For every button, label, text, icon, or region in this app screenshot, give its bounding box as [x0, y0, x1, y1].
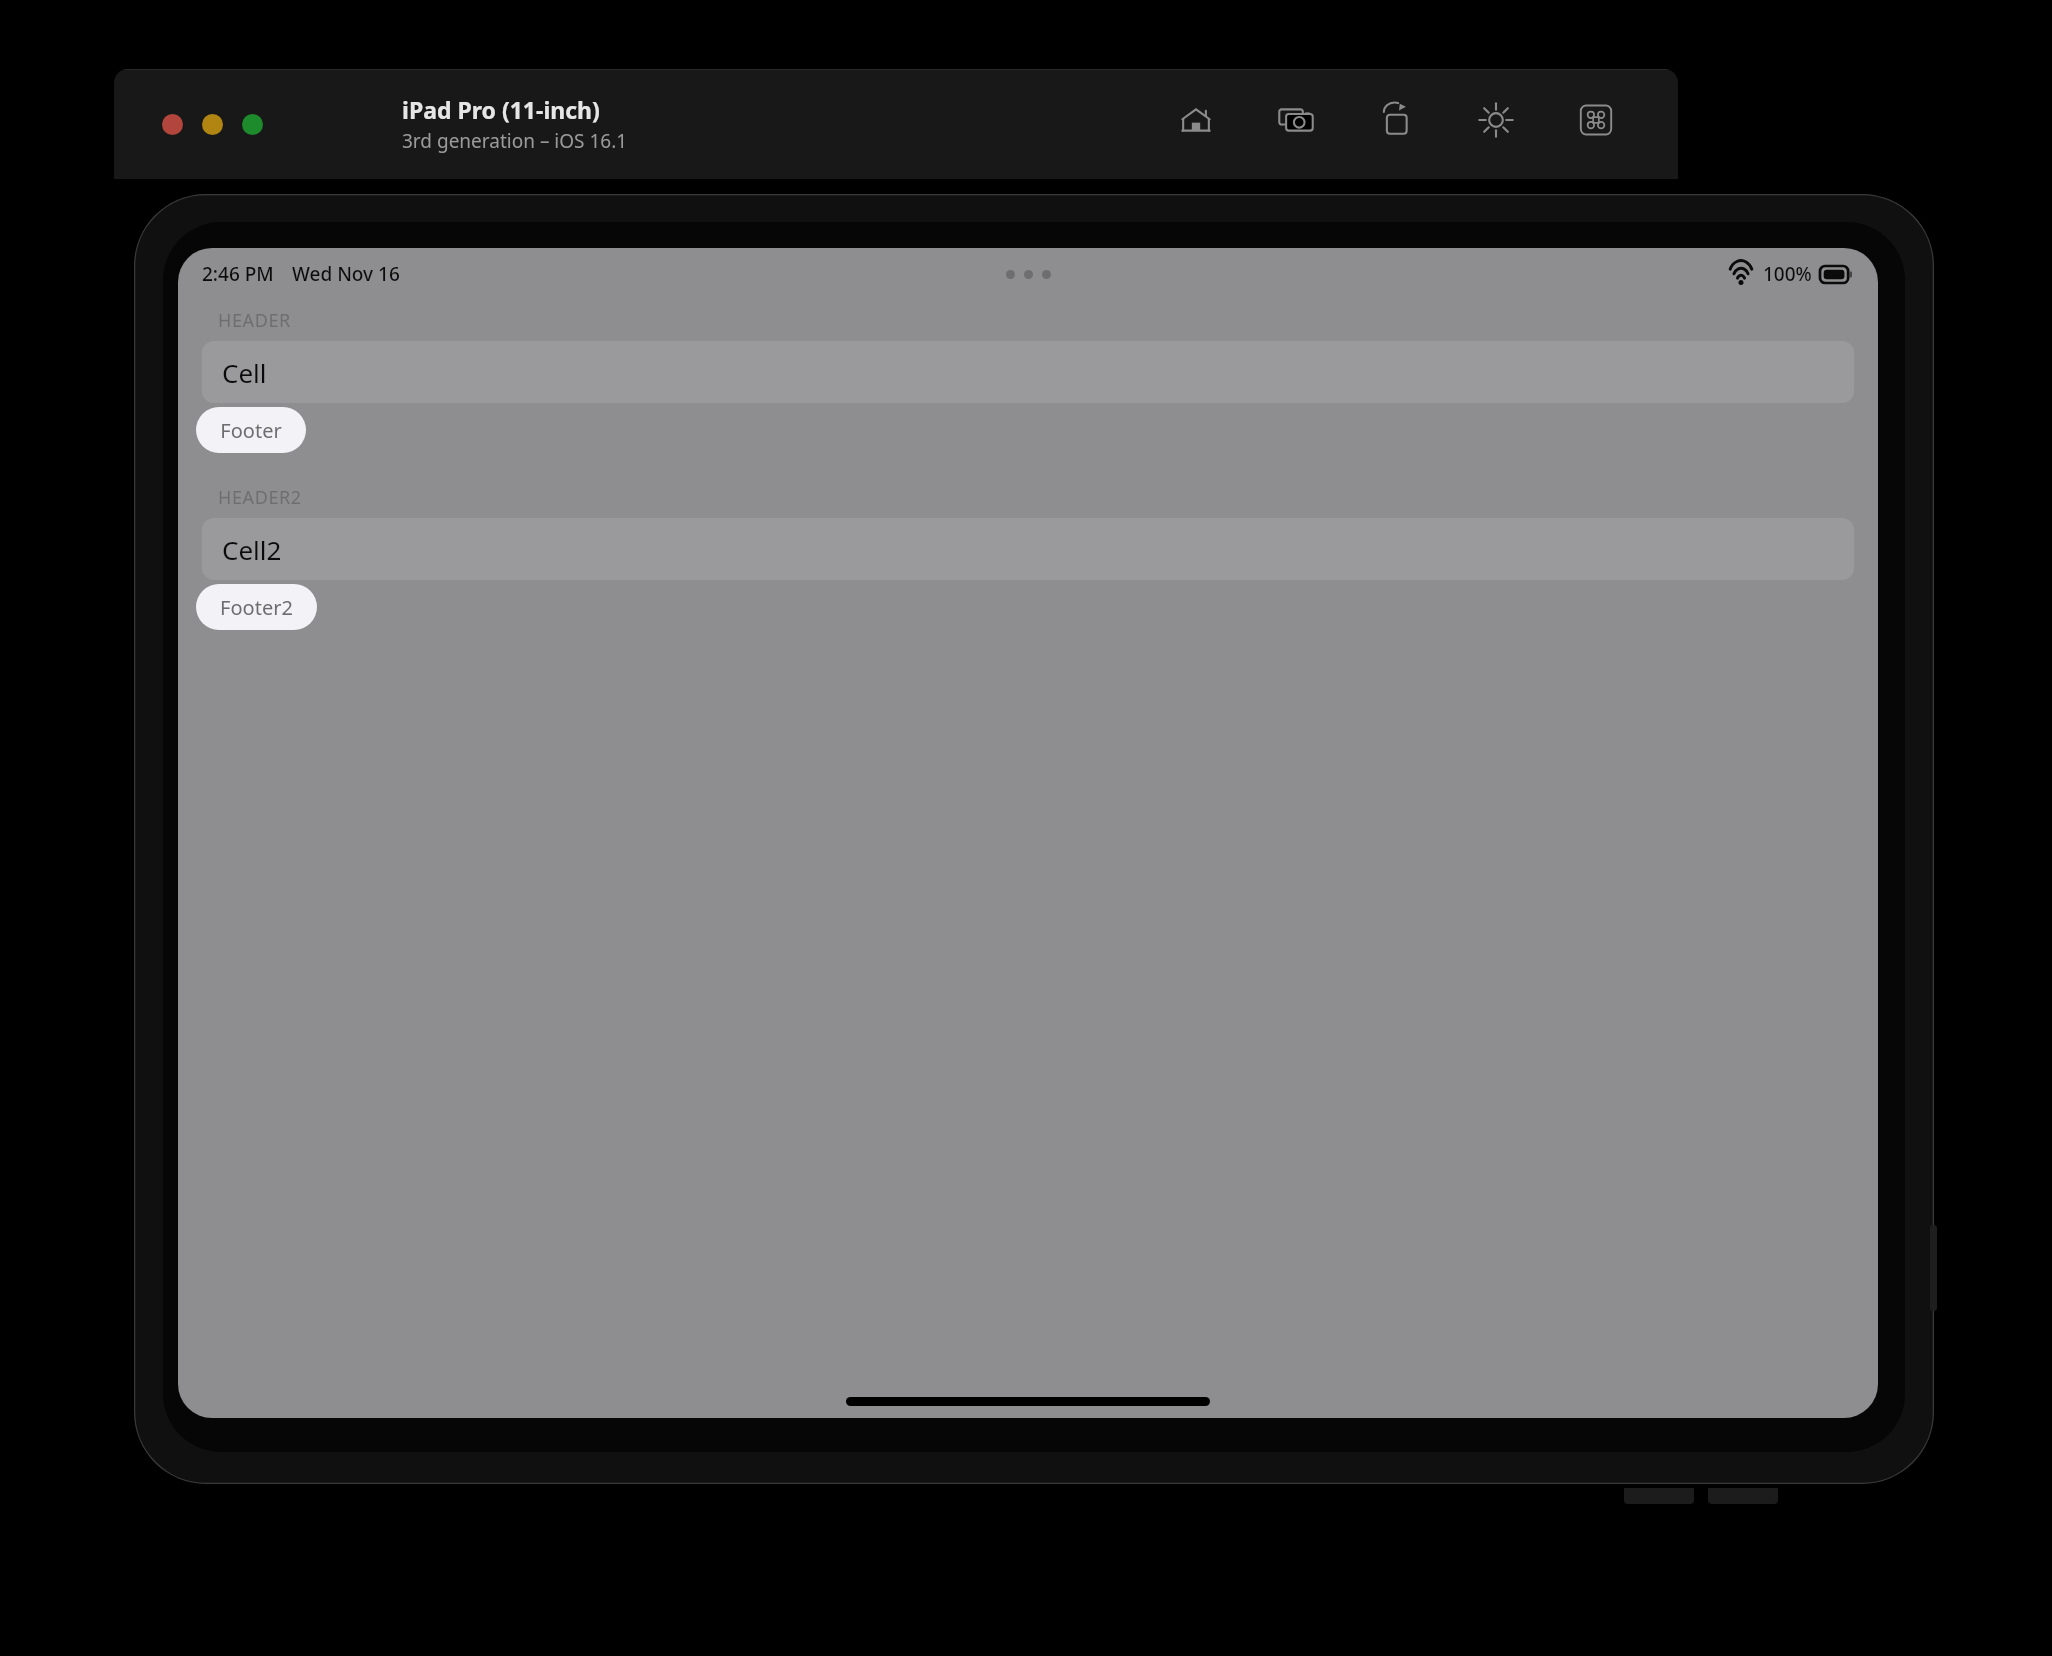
staticText: 2:46 PM: [202, 261, 274, 287]
staticText: HEADER2: [218, 485, 302, 510]
staticText: Cell2: [222, 532, 282, 567]
staticText: Footer2: [220, 594, 293, 621]
button[interactable]: Cell2: [202, 518, 1854, 580]
staticText: HEADER: [218, 308, 291, 333]
button[interactable]: Rotate: [1374, 98, 1418, 142]
button[interactable]: Minimise: [202, 114, 223, 135]
button[interactable]: Close: [162, 114, 183, 135]
button[interactable]: Keyboard shortcuts: [1574, 98, 1618, 142]
button[interactable]: Home: [1174, 98, 1218, 142]
staticText: Wed Nov 16: [292, 261, 400, 287]
staticText: iPad Pro (11-inch): [402, 94, 600, 125]
staticText: 100%: [1763, 261, 1812, 287]
button[interactable]: Zoom: [242, 114, 263, 135]
button[interactable]: Appearance: [1474, 98, 1518, 142]
staticText: Footer: [220, 417, 282, 444]
button[interactable]: Cell: [202, 341, 1854, 403]
staticText: 3rd generation – iOS 16.1: [402, 128, 628, 154]
button[interactable]: Screenshot: [1274, 98, 1318, 142]
staticText: Cell: [222, 355, 267, 390]
